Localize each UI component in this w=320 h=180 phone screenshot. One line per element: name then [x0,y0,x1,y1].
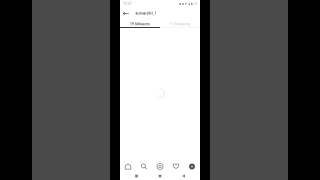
button[interactable]: Back [176,172,190,180]
staticText: 11 following [170,22,190,26]
button[interactable]: Home [153,172,167,180]
button[interactable]: Reels [152,160,168,173]
button[interactable]: Activity [168,160,184,173]
staticText: 46 [193,2,197,6]
button[interactable]: 11 following [160,19,200,27]
staticText: 10:47 [123,1,132,6]
button[interactable]: Profile [184,160,200,173]
button[interactable]: Recents [129,172,143,180]
button[interactable]: k.marshl_1 [120,8,200,19]
button[interactable]: 19 followers [120,19,160,27]
button[interactable]: Search [136,160,152,173]
staticText: k.marshl_1 [135,10,156,16]
staticText: 19 followers [130,22,150,26]
button[interactable]: Home [120,160,136,173]
